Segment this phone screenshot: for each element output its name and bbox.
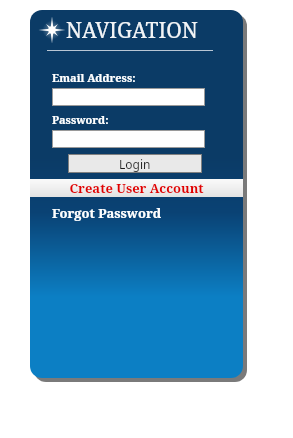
button[interactable]: Login: [68, 154, 202, 173]
staticText: Password:: [52, 112, 109, 127]
button[interactable]: [52, 88, 205, 106]
button[interactable]: Forgot Password: [50, 203, 164, 223]
other: Logo: [38, 16, 66, 44]
button[interactable]: Create User Account: [30, 179, 243, 197]
staticText: Forgot Password: [52, 204, 162, 222]
staticText: Email Address:: [52, 70, 136, 85]
staticText: Create User Account: [30, 179, 243, 197]
button[interactable]: [52, 130, 205, 148]
staticText: NAVIGATION: [66, 16, 198, 45]
staticText: Login: [119, 156, 151, 172]
